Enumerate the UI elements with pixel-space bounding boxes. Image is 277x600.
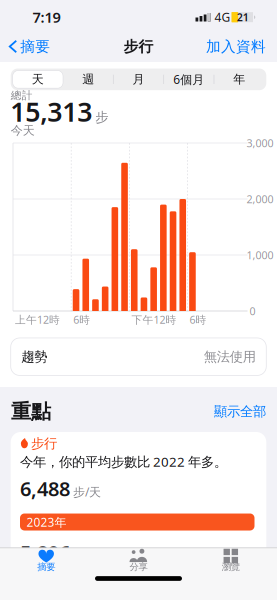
button[interactable]: 週: [63, 68, 113, 90]
button[interactable]: 摘要: [6, 35, 54, 57]
staticText: 步/天: [73, 484, 101, 500]
staticText: 分享: [129, 561, 147, 573]
staticText: 加入資料: [206, 37, 266, 55]
staticText: 上午12時: [15, 312, 60, 327]
staticText: 5,896: [20, 539, 70, 566]
staticText: 摘要: [37, 561, 55, 573]
button[interactable]: 步行重點: [11, 432, 266, 600]
staticText: 2,000: [246, 192, 273, 206]
staticText: 瀏覽: [222, 561, 240, 573]
staticText: 6時: [73, 312, 90, 327]
staticText: 重點: [11, 399, 51, 424]
staticText: 天: [32, 72, 44, 87]
staticText: 週: [82, 72, 94, 87]
staticText: 今天: [11, 123, 35, 138]
staticText: 7:19: [32, 7, 60, 27]
staticText: 21: [237, 10, 249, 24]
button[interactable]: 加入資料: [186, 35, 266, 57]
staticText: 步: [95, 109, 108, 126]
staticText: 總計: [11, 89, 33, 102]
staticText: 0: [249, 304, 255, 318]
staticText: 月: [132, 72, 144, 87]
staticText: 下午12時: [131, 312, 176, 327]
staticText: 無法使用: [204, 348, 256, 365]
staticText: 摘要: [20, 37, 50, 55]
staticText: 6時: [190, 312, 207, 327]
staticText: 15,313: [10, 94, 92, 129]
button[interactable]: 6個月: [164, 68, 214, 90]
staticText: 趨勢: [21, 348, 47, 365]
staticText: 2023年: [26, 514, 66, 530]
staticText: 6,488: [20, 475, 70, 502]
button[interactable]: 摘要: [11, 546, 81, 572]
button[interactable]: 顯示全部: [196, 402, 266, 420]
staticText: 3,000: [246, 136, 273, 150]
staticText: 步行: [31, 435, 57, 452]
button[interactable]: 瀏覽: [196, 546, 266, 572]
button[interactable]: 月: [113, 68, 164, 90]
button[interactable]: 天: [13, 68, 63, 90]
button[interactable]: 趨勢: [11, 338, 266, 375]
staticText: 1,000: [246, 248, 273, 262]
staticText: 今年，你的平均步數比 2022 年多。: [20, 453, 227, 470]
staticText: 步行: [123, 37, 153, 55]
staticText: 年: [233, 72, 245, 87]
button[interactable]: 年: [214, 68, 264, 90]
staticText: 4G: [214, 9, 230, 25]
staticText: 6個月: [173, 71, 204, 87]
button[interactable]: 分享: [103, 546, 173, 572]
staticText: 顯示全部: [214, 403, 266, 420]
